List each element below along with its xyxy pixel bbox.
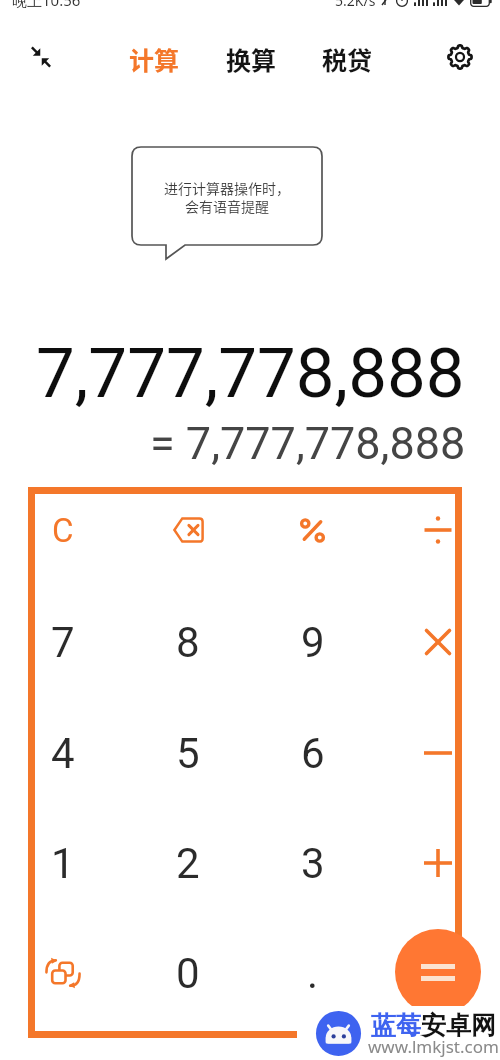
button[interactable]: Settings [437,34,483,80]
button[interactable]: 换算 [216,33,287,85]
button[interactable]: Backspace [125,475,250,585]
staticText: 进行计算器操作时， 会有语音提醒 [164,178,290,216]
staticText: 5 [176,729,200,778]
button[interactable]: Collapse [18,34,64,80]
staticText: www.lmkjst.com [368,1035,499,1058]
button[interactable] [250,475,375,585]
button[interactable] [375,698,500,808]
staticText: 5.2K/s [335,0,376,10]
button[interactable]: 3 [250,808,375,918]
staticText: C [52,511,74,550]
button[interactable]: 9 [250,587,375,697]
staticText: 6 [301,729,325,778]
button[interactable]: 8 [125,587,250,697]
button[interactable]: 2 [125,808,250,918]
button[interactable]: Unit conversion [0,918,125,1028]
button[interactable]: 7 [0,587,125,697]
button[interactable]: 税贷 [312,33,383,85]
button[interactable]: 5 [125,698,250,808]
button[interactable]: 4 [0,698,125,808]
staticText: 3 [301,839,325,888]
staticText: 换算 [226,41,277,77]
other: Unit conversion [44,954,82,992]
button[interactable] [375,587,500,697]
button[interactable]: 计算 [119,33,190,85]
staticText: 税贷 [322,41,373,77]
staticText: 8 [176,618,200,667]
staticText: 晚上10:56 [12,0,81,10]
button[interactable]: . [250,918,375,1028]
staticText: 7,777,778,888 [36,333,465,409]
staticText: 9 [301,618,325,667]
button[interactable]: 6 [250,698,375,808]
button[interactable]: 1 [0,808,125,918]
staticText: 蓝莓 [371,1010,421,1041]
button[interactable]: 0 [125,918,250,1028]
staticText: 1 [51,839,75,888]
staticText: 计算 [129,41,180,77]
staticText: = 7,777,778,888 [150,417,466,469]
button[interactable] [375,808,500,918]
button[interactable] [375,475,500,585]
staticText: 0 [176,949,200,998]
staticText: 2 [176,839,200,888]
staticText: 7 [51,618,75,667]
button[interactable]: C [0,475,125,585]
staticText: 4 [51,729,75,778]
staticText: 安卓网 [421,1010,496,1041]
other: Backspace [171,513,205,547]
button[interactable]: Equals [395,929,481,1015]
staticText: . [307,949,319,998]
